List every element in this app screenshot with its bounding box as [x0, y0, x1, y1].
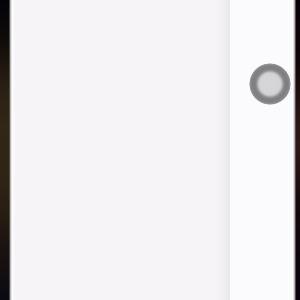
button[interactable]: Toggle: [249, 63, 291, 105]
